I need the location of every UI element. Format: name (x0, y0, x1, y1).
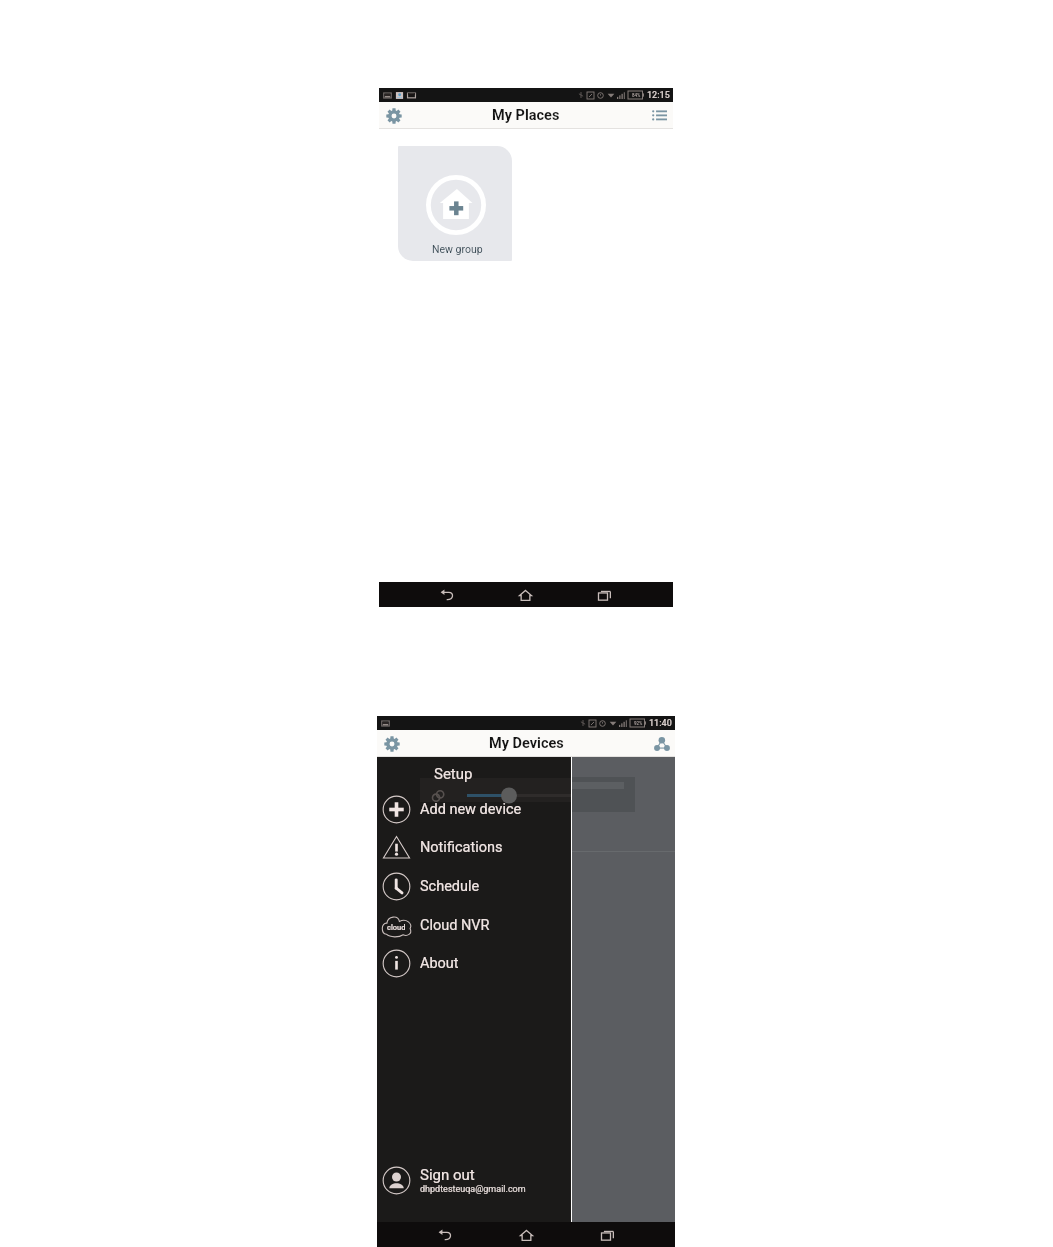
staticText: 11:40 (649, 718, 672, 729)
button[interactable]: New group (398, 146, 512, 261)
button[interactable]: Add new device (377, 791, 571, 827)
button[interactable]: Home (514, 584, 536, 606)
staticText: 84% (632, 93, 641, 98)
staticText: Sign out (420, 1166, 475, 1184)
button[interactable]: Recents (593, 584, 615, 606)
button[interactable]: Back (436, 584, 458, 606)
button[interactable]: Menu (649, 105, 670, 126)
staticText: Add new device (420, 801, 522, 818)
button[interactable]: Schedule (377, 868, 571, 904)
staticText: Notifications (420, 839, 503, 856)
staticText: Cloud NVR (420, 917, 490, 934)
button[interactable]: Home (515, 1224, 537, 1246)
button[interactable]: About (377, 945, 571, 981)
staticText: Schedule (420, 878, 480, 895)
button[interactable]: Notifications (377, 829, 571, 865)
button[interactable]: Back (434, 1224, 456, 1246)
staticText: 92% (634, 721, 643, 726)
staticText: My Places (492, 107, 560, 124)
staticText: 12:15 (647, 90, 670, 101)
staticText: New group (432, 243, 483, 255)
button[interactable]: Recents (596, 1224, 618, 1246)
button[interactable]: Menu (651, 733, 672, 754)
staticText: cloud (387, 923, 406, 932)
button[interactable]: cloud (377, 907, 571, 943)
button[interactable]: Sign out (377, 1162, 571, 1198)
staticText: dhpdtesteuqa@gmail.com (420, 1184, 526, 1195)
button[interactable]: Settings (381, 733, 402, 754)
button[interactable]: Settings (383, 105, 404, 126)
staticText: My Devices (489, 735, 564, 752)
staticText: About (420, 955, 459, 972)
staticText: Setup (434, 765, 473, 783)
